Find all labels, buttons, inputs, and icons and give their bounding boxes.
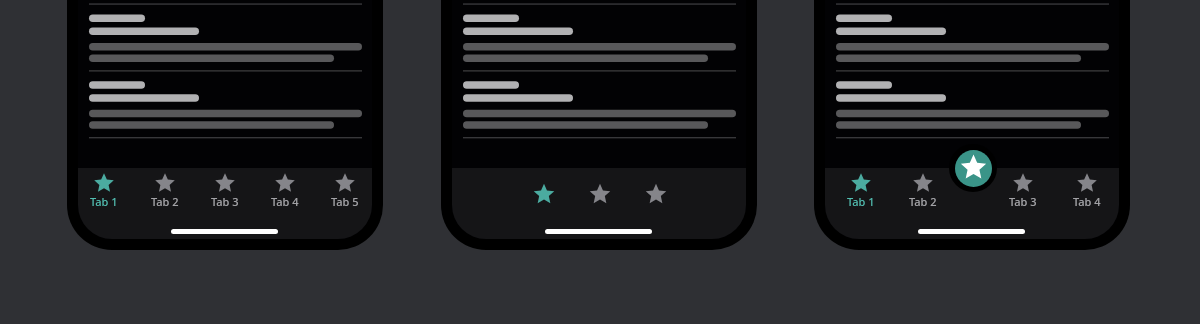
staticText: Tab 5: [331, 194, 359, 209]
button[interactable]: Tab 1: [832, 169, 890, 211]
staticText: Tab 3: [1009, 194, 1037, 209]
button[interactable]: [576, 174, 624, 214]
staticText: Tab 3: [211, 194, 239, 209]
staticText: Tab 4: [1073, 194, 1101, 209]
staticText: Tab 2: [151, 194, 179, 209]
button[interactable]: Tab 5: [316, 169, 374, 211]
staticText: Tab 1: [90, 194, 118, 209]
button[interactable]: [632, 174, 680, 214]
button[interactable]: [955, 150, 992, 187]
staticText: Tab 4: [271, 194, 299, 209]
button[interactable]: Tab 4: [256, 169, 314, 211]
staticText: Tab 2: [909, 194, 937, 209]
button[interactable]: Tab 1: [75, 169, 133, 211]
button[interactable]: Tab 3: [994, 169, 1052, 211]
button[interactable]: Tab 4: [1058, 169, 1116, 211]
button[interactable]: [520, 174, 568, 214]
button[interactable]: Tab 2: [894, 169, 952, 211]
button[interactable]: Tab 2: [136, 169, 194, 211]
button[interactable]: Tab 3: [196, 169, 254, 211]
staticText: Tab 1: [847, 194, 875, 209]
